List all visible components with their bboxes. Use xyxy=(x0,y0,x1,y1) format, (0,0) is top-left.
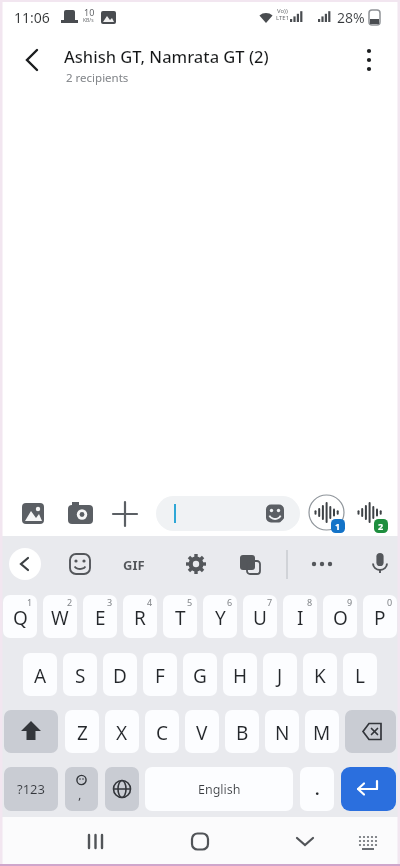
button[interactable] xyxy=(14,42,50,78)
button[interactable]: G xyxy=(183,653,217,696)
staticText: C xyxy=(156,720,169,746)
button[interactable]: Q xyxy=(3,595,37,638)
staticText: H xyxy=(233,663,248,689)
button[interactable]: C xyxy=(145,710,179,753)
staticText: D xyxy=(113,663,127,689)
button[interactable] xyxy=(9,548,41,580)
button[interactable]: L xyxy=(343,653,377,696)
staticText: KB/s xyxy=(83,17,94,24)
button[interactable] xyxy=(75,822,115,862)
button[interactable]: English xyxy=(145,767,293,811)
staticText: 4 xyxy=(147,596,153,608)
staticText: R xyxy=(134,605,146,631)
staticText: Vo)) xyxy=(277,7,288,15)
button[interactable]: I xyxy=(283,595,317,638)
button[interactable]: X xyxy=(105,710,139,753)
staticText: N xyxy=(275,720,290,746)
button[interactable]: Y xyxy=(203,595,237,638)
staticText: J xyxy=(277,663,283,689)
staticText: English xyxy=(198,781,241,798)
button[interactable]: A xyxy=(23,653,57,696)
button[interactable]: P xyxy=(363,595,397,638)
staticText: G xyxy=(193,663,207,689)
button[interactable]: M xyxy=(305,710,339,753)
button[interactable]: N xyxy=(265,710,299,753)
staticText: M xyxy=(313,720,331,746)
button[interactable] xyxy=(285,822,325,862)
button[interactable]: F xyxy=(143,653,177,696)
button[interactable]: H xyxy=(223,653,257,696)
staticText: L xyxy=(355,663,365,689)
button[interactable] xyxy=(345,710,396,753)
staticText: I xyxy=(297,605,304,631)
staticText: 2 xyxy=(67,596,73,608)
button[interactable]: V xyxy=(185,710,219,753)
staticText: W xyxy=(51,605,69,631)
button[interactable]: U xyxy=(243,595,277,638)
staticText: 2 xyxy=(378,520,384,532)
button[interactable]: 1 xyxy=(308,494,345,531)
button[interactable]: W xyxy=(43,595,77,638)
staticText: S xyxy=(75,663,86,689)
staticText: 8 xyxy=(307,596,313,608)
staticText: 9 xyxy=(347,596,353,608)
staticText: V xyxy=(196,720,208,746)
staticText: 10 xyxy=(84,6,95,18)
staticText: 5 xyxy=(187,596,193,608)
staticText: X xyxy=(116,720,128,746)
button[interactable]: . xyxy=(300,767,334,811)
button[interactable]: ?123 xyxy=(4,767,58,811)
staticText: 6 xyxy=(227,596,233,608)
staticText: Q xyxy=(13,605,28,631)
button[interactable]: O xyxy=(323,595,357,638)
staticText: F xyxy=(155,663,165,689)
button[interactable] xyxy=(4,710,58,753)
button[interactable]: D xyxy=(103,653,137,696)
button[interactable]: B xyxy=(225,710,259,753)
staticText: U xyxy=(253,605,267,631)
staticText: 0 xyxy=(387,596,393,608)
staticText: , xyxy=(78,785,82,803)
staticText: GIF xyxy=(123,556,145,574)
staticText: B xyxy=(236,720,249,746)
staticText: LTE1 xyxy=(276,14,290,22)
button[interactable]: T xyxy=(163,595,197,638)
staticText: 1 xyxy=(335,520,341,532)
staticText: Y xyxy=(215,605,226,631)
staticText: O xyxy=(333,605,348,631)
button[interactable]: J xyxy=(263,653,297,696)
staticText: 28% xyxy=(337,8,365,27)
staticText: K xyxy=(314,663,326,689)
staticText: A xyxy=(34,663,47,689)
staticText: ?123 xyxy=(17,780,45,798)
button[interactable]: K xyxy=(303,653,337,696)
button[interactable]: 2 xyxy=(351,494,388,531)
staticText: . xyxy=(315,778,320,800)
staticText: Ashish GT, Namrata GT (2) xyxy=(64,45,269,67)
staticText: 3 xyxy=(107,596,113,608)
button[interactable]: R xyxy=(123,595,157,638)
button[interactable] xyxy=(351,42,387,78)
staticText: P xyxy=(374,605,386,631)
button[interactable] xyxy=(180,822,220,862)
button[interactable]: Z xyxy=(65,710,99,753)
staticText: 11:06 xyxy=(14,8,50,27)
staticText: 7 xyxy=(267,596,273,608)
staticText: 1 xyxy=(27,596,33,608)
staticText: E xyxy=(95,605,106,631)
staticText: T xyxy=(175,605,186,631)
button[interactable]: E xyxy=(83,595,117,638)
staticText: 2 recipients xyxy=(66,70,129,86)
button[interactable] xyxy=(156,496,300,531)
button[interactable] xyxy=(105,767,139,811)
button[interactable]: S xyxy=(63,653,97,696)
button[interactable] xyxy=(341,767,396,811)
staticText: Z xyxy=(77,720,88,746)
button[interactable]: , xyxy=(65,767,98,811)
